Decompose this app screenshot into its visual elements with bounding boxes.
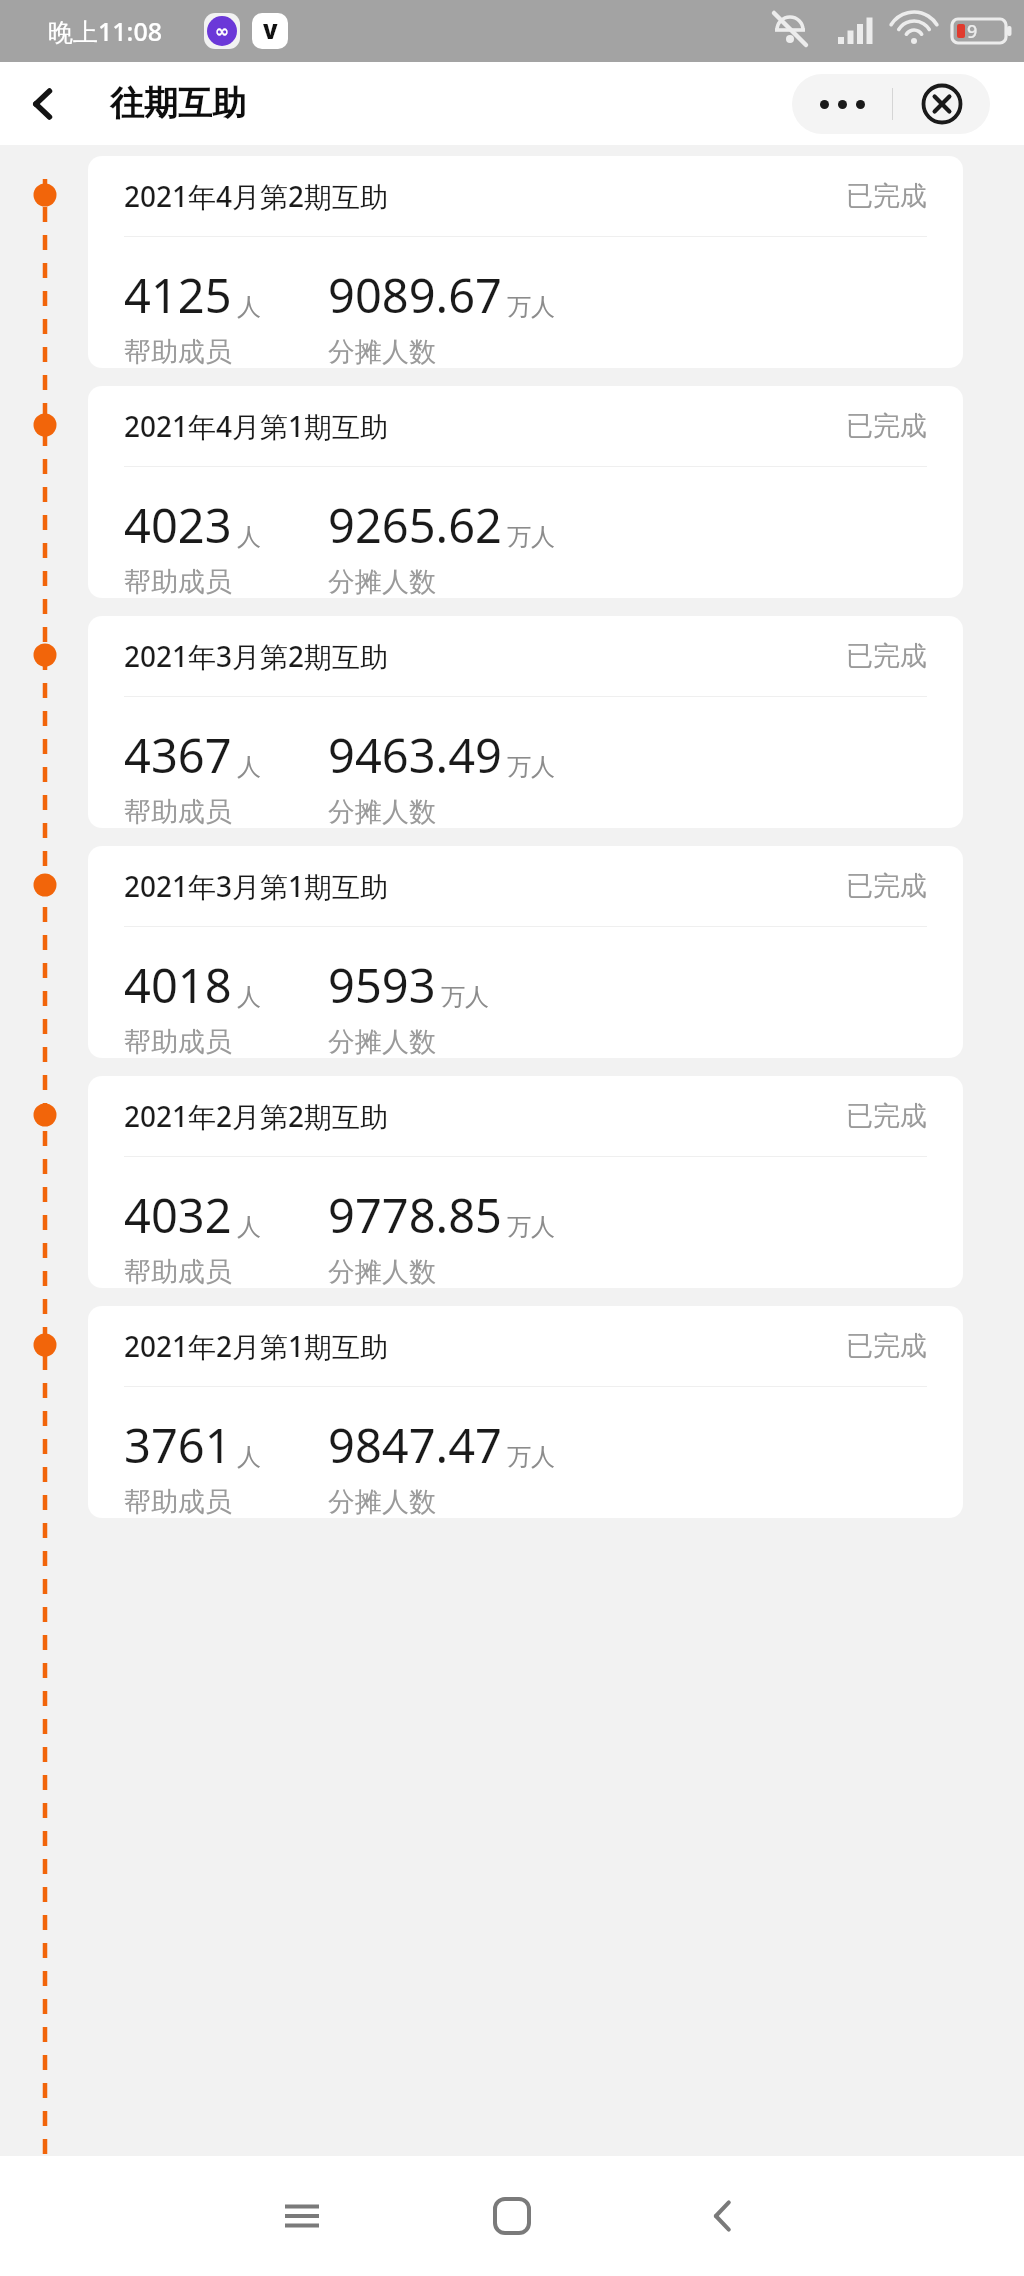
staticText: 人 xyxy=(237,1212,261,1242)
staticText: 万人 xyxy=(507,1212,555,1242)
staticText: 已完成 xyxy=(846,409,927,443)
button[interactable]: 2021年4月第1期互助 xyxy=(88,386,963,598)
staticText: 人 xyxy=(237,522,261,552)
staticText: 4023 xyxy=(124,493,232,557)
staticText: 万人 xyxy=(507,292,555,322)
staticText: 9089.67 xyxy=(328,263,502,327)
staticText: 万人 xyxy=(507,522,555,552)
staticText: 帮助成员 xyxy=(124,1025,232,1058)
staticText: 帮助成员 xyxy=(124,565,232,598)
button[interactable]: Close xyxy=(893,74,990,134)
staticText: 帮助成员 xyxy=(124,335,232,368)
staticText: 帮助成员 xyxy=(124,1255,232,1288)
staticText: 分摊人数 xyxy=(328,1025,436,1058)
staticText: 9 xyxy=(967,19,978,44)
staticText: 已完成 xyxy=(846,639,927,673)
staticText: 2021年3月第1期互助 xyxy=(124,867,389,905)
staticText: 2021年2月第1期互助 xyxy=(124,1327,389,1365)
button[interactable]: Home xyxy=(472,2176,552,2256)
staticText: 4367 xyxy=(124,723,232,787)
staticText: 万人 xyxy=(507,1442,555,1472)
staticText: V xyxy=(263,17,278,46)
staticText: 往期互助 xyxy=(110,82,246,125)
staticText: 万人 xyxy=(441,982,489,1012)
staticText: 分摊人数 xyxy=(328,795,436,828)
staticText: 人 xyxy=(237,752,261,782)
staticText: 帮助成员 xyxy=(124,1485,232,1518)
staticText: 帮助成员 xyxy=(124,795,232,828)
button[interactable]: Back xyxy=(682,2176,762,2256)
staticText: 已完成 xyxy=(846,869,927,903)
staticText: 2021年3月第2期互助 xyxy=(124,637,389,675)
staticText: 9463.49 xyxy=(328,723,502,787)
staticText: 人 xyxy=(237,982,261,1012)
staticText: 人 xyxy=(237,292,261,322)
button[interactable]: Recent apps xyxy=(262,2176,342,2256)
staticText: 9847.47 xyxy=(328,1413,502,1477)
button[interactable]: 2021年3月第1期互助 xyxy=(88,846,963,1058)
staticText: 4125 xyxy=(124,263,232,327)
button[interactable]: 2021年4月第2期互助 xyxy=(88,156,963,368)
staticText: 9778.85 xyxy=(328,1183,502,1247)
staticText: 已完成 xyxy=(846,1329,927,1363)
staticText: 4032 xyxy=(124,1183,232,1247)
staticText: 2021年2月第2期互助 xyxy=(124,1097,389,1135)
button[interactable]: 2021年2月第2期互助 xyxy=(88,1076,963,1288)
staticText: 分摊人数 xyxy=(328,1485,436,1518)
staticText: 晚上11:08 xyxy=(48,14,163,48)
button[interactable]: 2021年3月第2期互助 xyxy=(88,616,963,828)
staticText: 已完成 xyxy=(846,179,927,213)
staticText: ∞ xyxy=(215,21,230,41)
staticText: 9265.62 xyxy=(328,493,502,557)
staticText: 万人 xyxy=(507,752,555,782)
staticText: 9593 xyxy=(328,953,436,1017)
button[interactable]: Back xyxy=(14,75,72,133)
button[interactable]: More options xyxy=(792,74,892,134)
staticText: 4018 xyxy=(124,953,232,1017)
staticText: 3761 xyxy=(124,1413,232,1477)
staticText: 2021年4月第2期互助 xyxy=(124,177,389,215)
staticText: 人 xyxy=(237,1442,261,1472)
staticText: 分摊人数 xyxy=(328,335,436,368)
button[interactable]: 2021年2月第1期互助 xyxy=(88,1306,963,1518)
staticText: 分摊人数 xyxy=(328,1255,436,1288)
staticText: 分摊人数 xyxy=(328,565,436,598)
staticText: 已完成 xyxy=(846,1099,927,1133)
staticText: 2021年4月第1期互助 xyxy=(124,407,389,445)
